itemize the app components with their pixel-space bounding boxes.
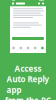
- staticText: Access: [14, 63, 41, 74]
- staticText: from the PC: [5, 95, 51, 100]
- staticText: Auto Reply app: [6, 74, 49, 95]
